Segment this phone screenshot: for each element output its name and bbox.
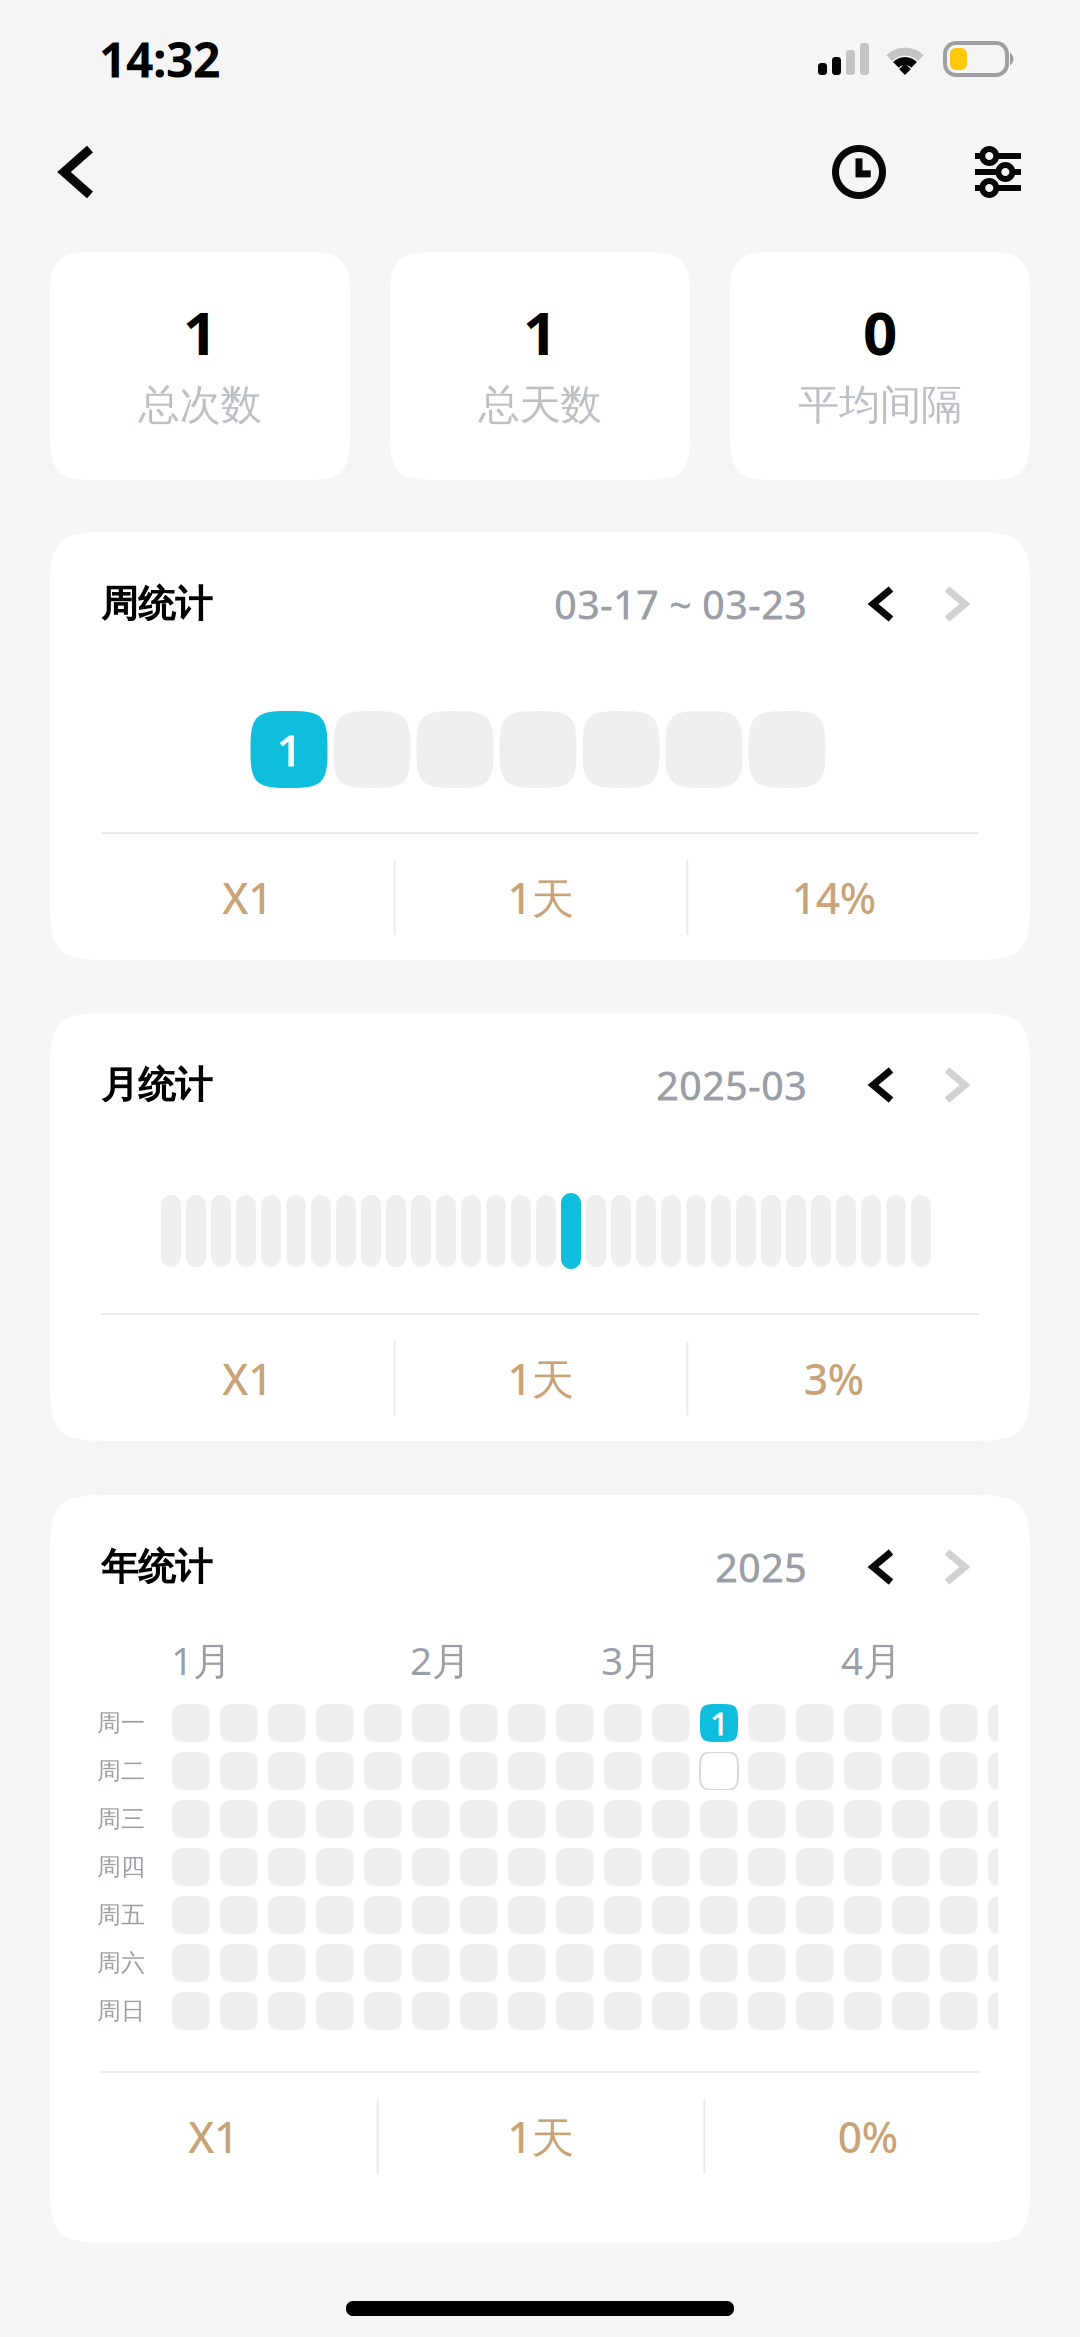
- staticText: 总次数: [138, 380, 261, 430]
- button[interactable]: 1: [390, 252, 690, 480]
- button[interactable]: 1: [50, 252, 350, 480]
- staticText: X1: [222, 1350, 272, 1407]
- staticText: 03-17 ~ 03-23: [554, 577, 807, 630]
- staticText: 1: [523, 292, 557, 372]
- staticText: 平均间隔: [798, 380, 962, 430]
- button[interactable]: Back: [0, 125, 124, 219]
- staticText: 4月: [841, 1634, 902, 1686]
- staticText: 1天: [507, 1350, 574, 1407]
- staticText: 2025-03: [656, 1058, 807, 1111]
- staticText: 1: [710, 1702, 728, 1744]
- button[interactable]: Filter: [944, 125, 1080, 219]
- staticText: 周六: [97, 1948, 145, 1978]
- button[interactable]: Next period: [905, 573, 979, 635]
- staticText: 1天: [507, 869, 574, 926]
- staticText: 0: [863, 292, 897, 372]
- staticText: 周日: [97, 1996, 145, 2026]
- button[interactable]: Previous period: [807, 1536, 905, 1598]
- staticText: 1天: [507, 2108, 574, 2165]
- button[interactable]: Next period: [905, 1536, 979, 1598]
- button[interactable]: Previous period: [807, 573, 905, 635]
- staticText: 年统计: [101, 1544, 212, 1590]
- button[interactable]: Next period: [905, 1054, 979, 1116]
- staticText: 周五: [97, 1900, 145, 1930]
- staticText: 1: [276, 720, 301, 779]
- staticText: 周三: [97, 1804, 145, 1834]
- button[interactable]: History: [803, 125, 944, 219]
- staticText: 3月: [601, 1634, 662, 1686]
- staticText: 2025: [715, 1540, 807, 1593]
- staticText: 总天数: [478, 380, 601, 430]
- staticText: 14:32: [99, 27, 220, 91]
- staticText: 3%: [804, 1350, 864, 1407]
- staticText: 1: [183, 292, 217, 372]
- staticText: 周统计: [101, 581, 212, 627]
- staticText: 周四: [97, 1852, 145, 1882]
- staticText: 14%: [792, 869, 876, 926]
- staticText: 月统计: [101, 1062, 212, 1108]
- staticText: 0%: [838, 2108, 898, 2165]
- staticText: X1: [222, 869, 272, 926]
- button[interactable]: 0: [730, 252, 1030, 480]
- staticText: 1月: [171, 1634, 232, 1686]
- staticText: 2月: [410, 1634, 471, 1686]
- staticText: 周二: [97, 1756, 145, 1786]
- staticText: X1: [188, 2108, 238, 2165]
- button[interactable]: Previous period: [807, 1054, 905, 1116]
- staticText: 周一: [97, 1708, 145, 1738]
